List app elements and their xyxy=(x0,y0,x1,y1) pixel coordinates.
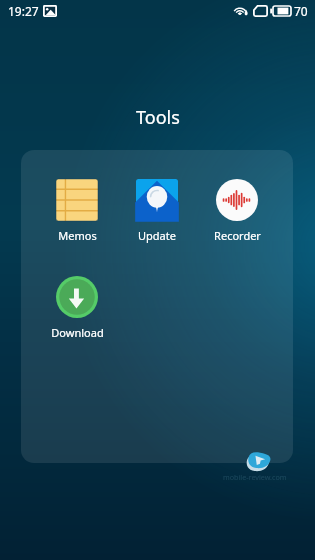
button[interactable]: Recorder xyxy=(197,179,277,243)
staticText: Download xyxy=(51,325,104,340)
staticText: Update xyxy=(138,228,176,243)
staticText: Tools xyxy=(136,105,180,130)
staticText: mobile-review.com xyxy=(223,472,287,482)
button[interactable]: Update xyxy=(117,179,197,243)
staticText: 19:27 xyxy=(8,3,39,19)
staticText: Memos xyxy=(58,228,97,243)
button[interactable]: Memos xyxy=(37,179,117,243)
button[interactable]: Download xyxy=(37,276,117,340)
staticText: 70 xyxy=(294,3,308,19)
staticText: Recorder xyxy=(214,228,261,243)
